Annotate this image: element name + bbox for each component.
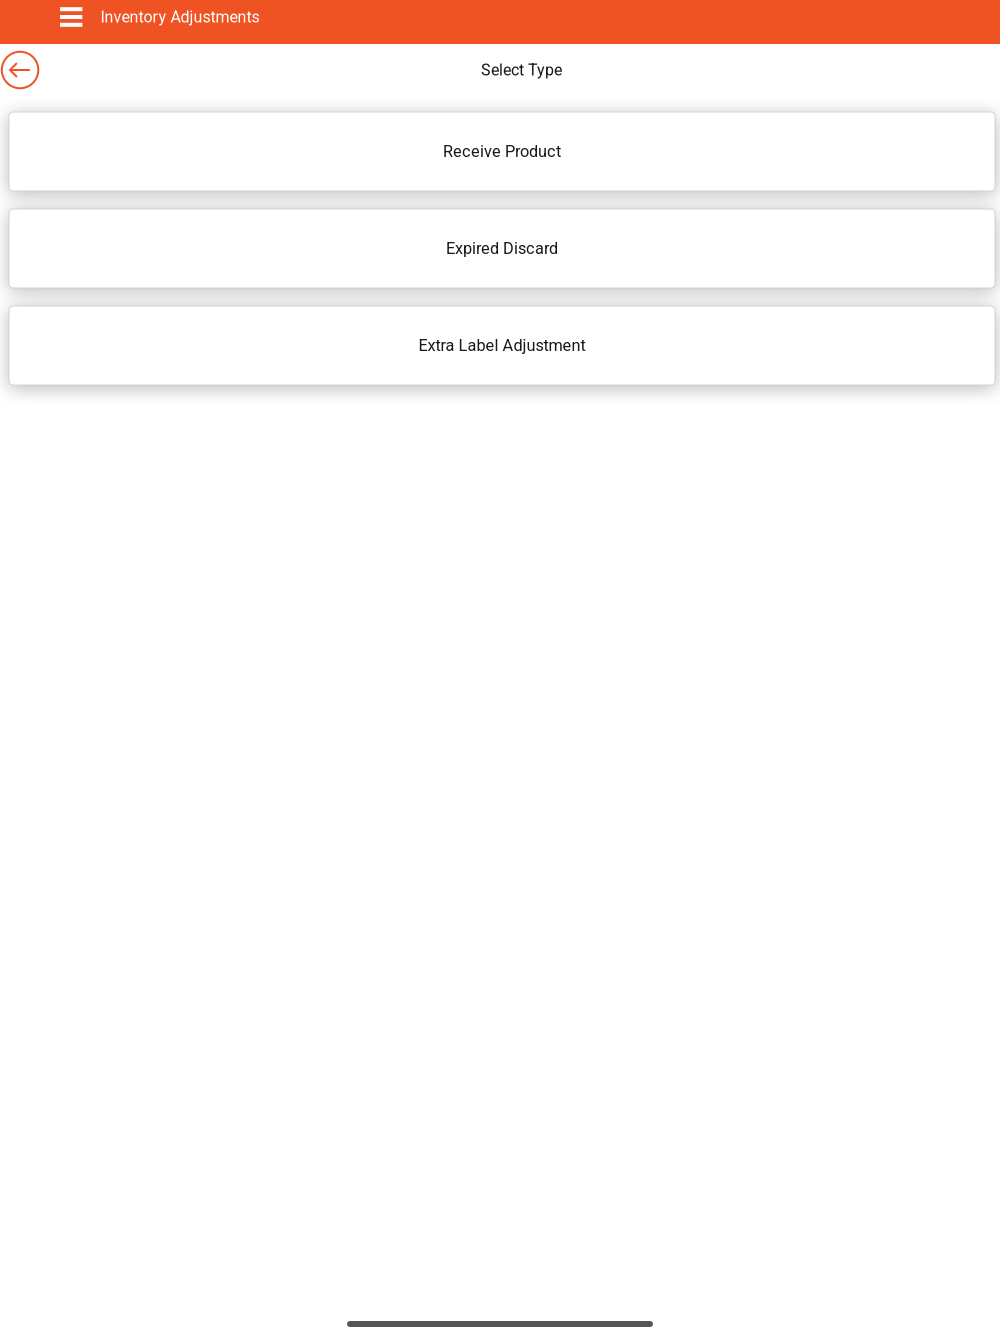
staticText: Extra Label Adjustment: [418, 336, 585, 355]
staticText: Inventory Adjustments: [100, 8, 259, 26]
staticText: Receive Product: [443, 142, 561, 161]
button[interactable]: Extra Label Adjustment: [9, 306, 995, 385]
button[interactable]: Receive Product: [9, 112, 995, 191]
button[interactable]: Expired Discard: [9, 209, 995, 288]
button[interactable]: Open navigation menu: [48, 0, 94, 34]
staticText: Expired Discard: [446, 239, 558, 258]
button[interactable]: Back: [0, 44, 38, 96]
staticText: Select Type: [481, 61, 562, 79]
